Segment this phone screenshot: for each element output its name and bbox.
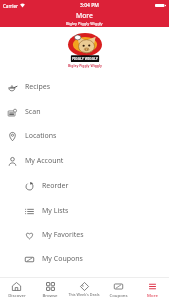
staticText: My Coupons: [42, 254, 83, 264]
staticText: Coupons: [109, 292, 128, 298]
staticText: Locations: [25, 131, 57, 141]
button[interactable]: Browse: [33, 282, 67, 298]
staticText: Reorder: [42, 181, 69, 191]
button[interactable]: More: [135, 282, 169, 298]
button[interactable]: My Lists: [0, 199, 169, 223]
staticText: PIGGLY WIGGLY: [72, 56, 98, 60]
staticText: More: [147, 292, 158, 298]
button[interactable]: My Coupons: [0, 247, 169, 271]
staticText: Scan: [25, 107, 41, 117]
button[interactable]: Recipes: [0, 75, 169, 99]
staticText: Recipes: [25, 82, 51, 92]
button[interactable]: This Week's Deals: [67, 282, 101, 297]
button[interactable]: My Account: [0, 149, 169, 173]
button[interactable]: My Favorites: [0, 223, 169, 247]
staticText: My Account: [25, 156, 64, 166]
button[interactable]: Coupons: [101, 282, 135, 298]
staticText: 3:04 PM: [80, 2, 99, 9]
staticText: My Lists: [42, 206, 69, 216]
button[interactable]: Locations: [0, 124, 169, 148]
staticText: Bigley Piggly Wiggly: [68, 63, 102, 68]
staticText: Discover: [8, 292, 26, 298]
staticText: My Favorites: [42, 230, 84, 240]
button[interactable]: Scan: [0, 100, 169, 124]
staticText: Carrier: [3, 3, 18, 9]
button[interactable]: Reorder: [0, 174, 169, 198]
staticText: Bigley Piggly Wiggly: [66, 21, 103, 26]
button[interactable]: Discover: [0, 282, 33, 298]
staticText: This Week's Deals: [68, 292, 100, 297]
staticText: More: [76, 11, 93, 20]
staticText: Browse: [42, 292, 58, 298]
